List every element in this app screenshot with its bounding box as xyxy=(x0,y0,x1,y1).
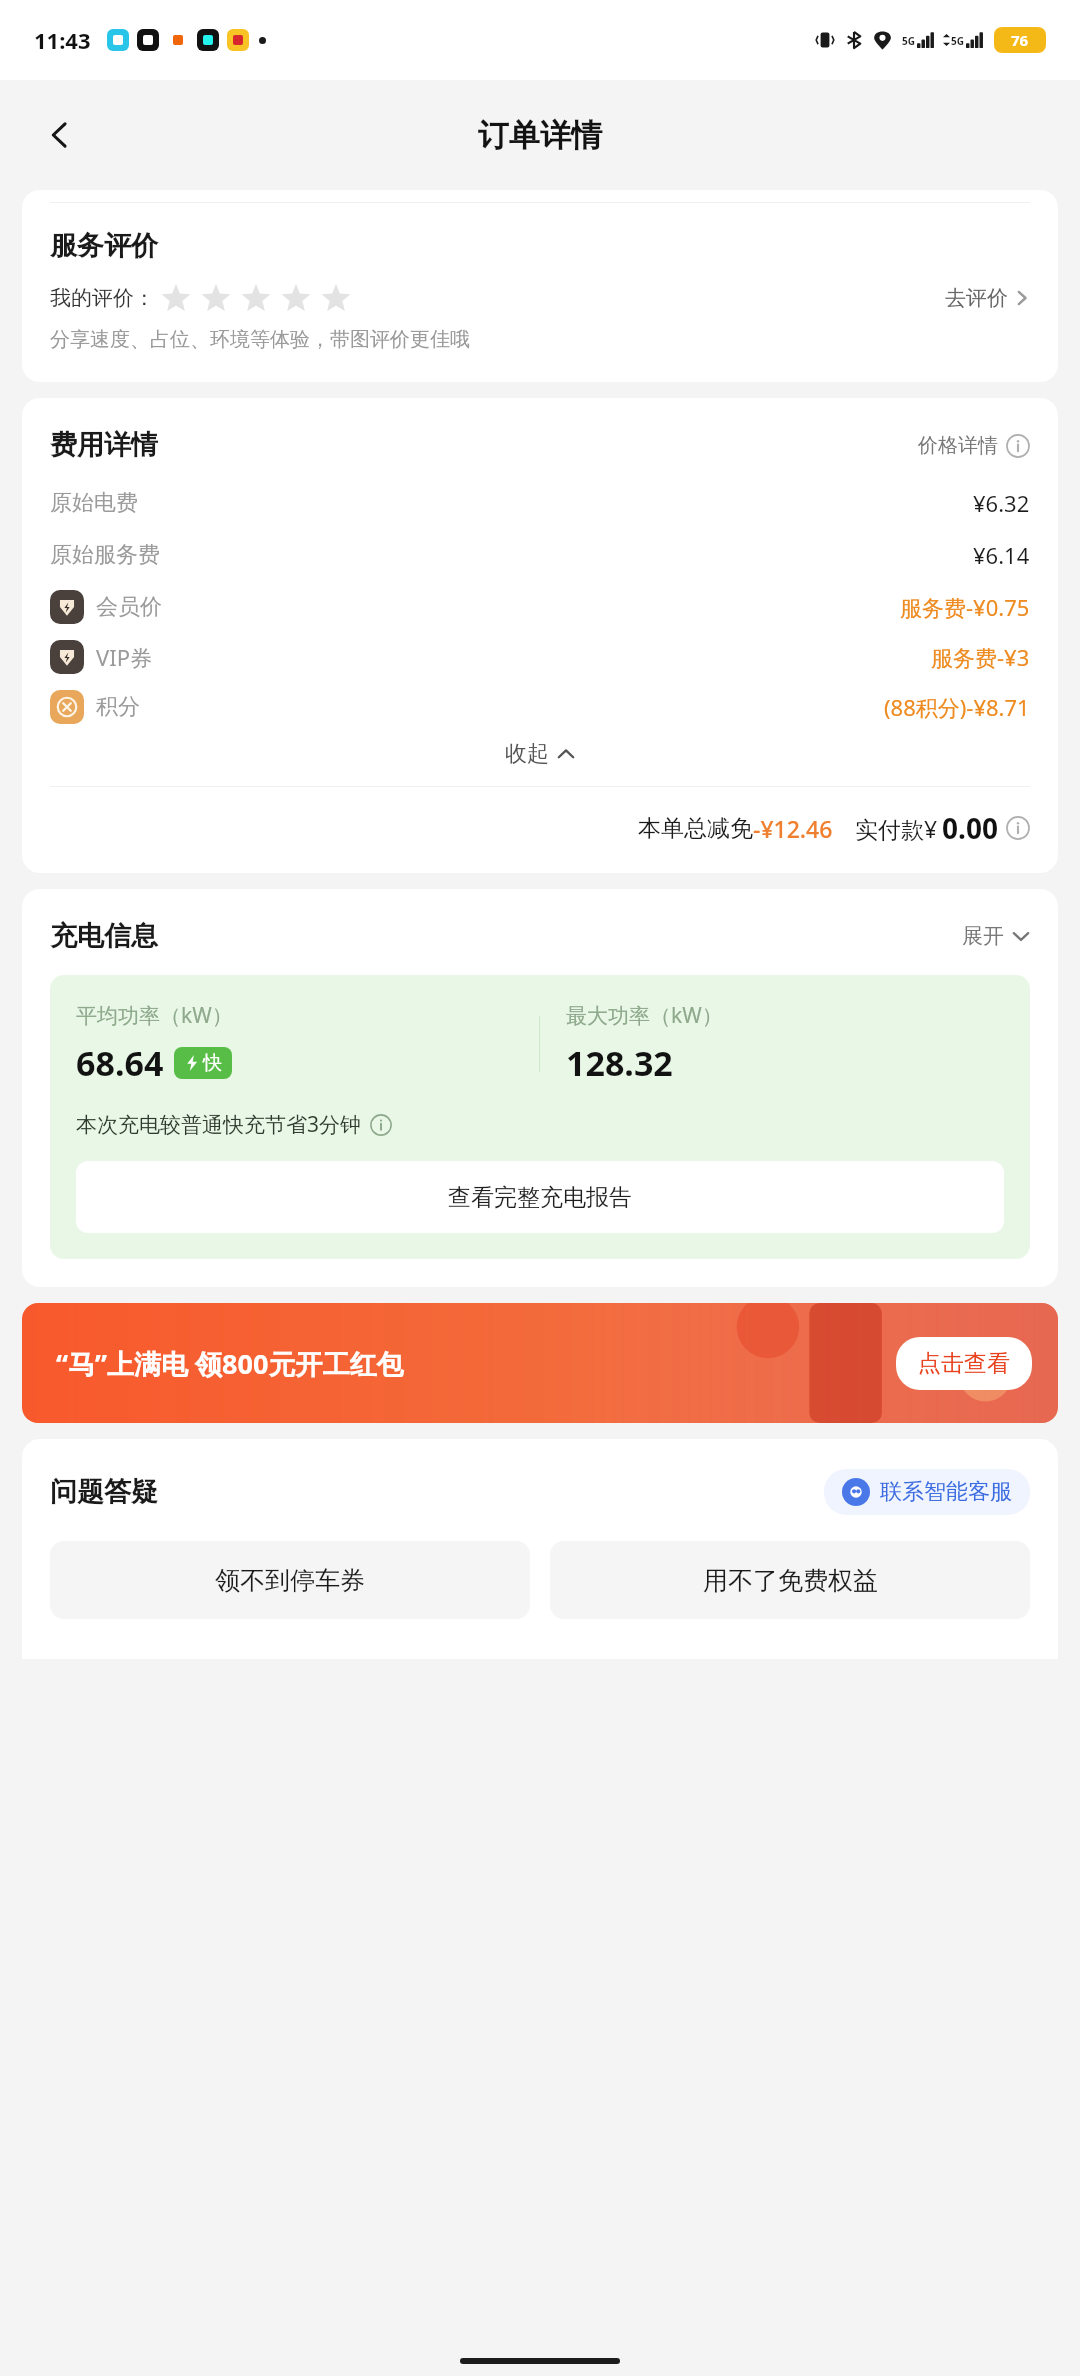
staticText: -¥12.46 xyxy=(753,813,833,844)
staticText: 点击查看 xyxy=(918,1349,1010,1378)
staticText: 问题答疑 xyxy=(50,1475,158,1509)
staticText: 价格详情 xyxy=(918,433,998,458)
staticText: 分享速度、占位、环境等体验，带图评价更佳哦 xyxy=(50,327,470,352)
staticText: 128.32 xyxy=(566,1040,673,1086)
staticText: 快 xyxy=(203,1051,222,1075)
staticText: 服务评价 xyxy=(50,229,158,263)
staticText: (88积分)-¥8.71 xyxy=(884,692,1030,722)
staticText: ¥6.32 xyxy=(973,488,1030,518)
staticText: 积分 xyxy=(96,693,140,721)
button[interactable]: 联系智能客服 xyxy=(842,1478,1012,1506)
staticText: 服务费-¥0.75 xyxy=(900,592,1030,622)
button[interactable]: Back xyxy=(30,105,90,165)
staticText: 用不了免费权益 xyxy=(703,1565,878,1596)
staticText: 原始电费 xyxy=(50,489,138,517)
button[interactable]: 查看完整充电报告 xyxy=(76,1161,1004,1233)
staticText: 最大功率（kW） xyxy=(566,1001,723,1030)
staticText: 展开 xyxy=(962,923,1004,949)
button[interactable]: 领不到停车券 xyxy=(50,1541,530,1619)
staticText: 我的评价： xyxy=(50,285,155,311)
staticText: 费用详情 xyxy=(50,428,158,462)
staticText: 会员价 xyxy=(96,593,162,621)
staticText: 收起 xyxy=(505,740,549,768)
staticText: 5G xyxy=(902,34,915,48)
staticText: 平均功率（kW） xyxy=(76,1001,233,1030)
button[interactable]: 我的评价： xyxy=(50,283,1030,313)
staticText: 11:43 xyxy=(34,25,91,55)
button[interactable]: 展开 xyxy=(962,923,1030,949)
staticText: 0.00 xyxy=(942,809,998,847)
staticText: 充电信息 xyxy=(50,919,158,953)
staticText: 68.64 xyxy=(76,1040,164,1086)
staticText: VIP券 xyxy=(96,642,152,672)
staticText: 去评价 xyxy=(945,285,1008,311)
staticText: ¥6.14 xyxy=(973,540,1030,570)
staticText: 订单详情 xyxy=(478,116,602,155)
button[interactable]: “马”上满电 领800元开工红包 xyxy=(22,1303,1058,1423)
button[interactable]: 价格详情 xyxy=(918,433,1030,458)
staticText: 本次充电较普通快充节省3分钟 xyxy=(76,1110,362,1139)
staticText: 服务费-¥3 xyxy=(931,642,1030,672)
staticText: 领不到停车券 xyxy=(215,1565,365,1596)
staticText: 查看完整充电报告 xyxy=(448,1183,632,1212)
staticText: 原始服务费 xyxy=(50,541,160,569)
staticText: “马”上满电 领800元开工红包 xyxy=(56,1345,404,1382)
staticText: 联系智能客服 xyxy=(880,1478,1012,1506)
staticText: 76 xyxy=(1011,30,1029,50)
staticText: 实付款¥ xyxy=(855,813,938,844)
staticText: 本单总减免 xyxy=(638,814,753,843)
button[interactable]: 收起 xyxy=(50,740,1030,768)
staticText: 5G xyxy=(951,34,964,48)
button[interactable]: 用不了免费权益 xyxy=(550,1541,1030,1619)
button[interactable]: 点击查看 xyxy=(918,1349,1010,1378)
